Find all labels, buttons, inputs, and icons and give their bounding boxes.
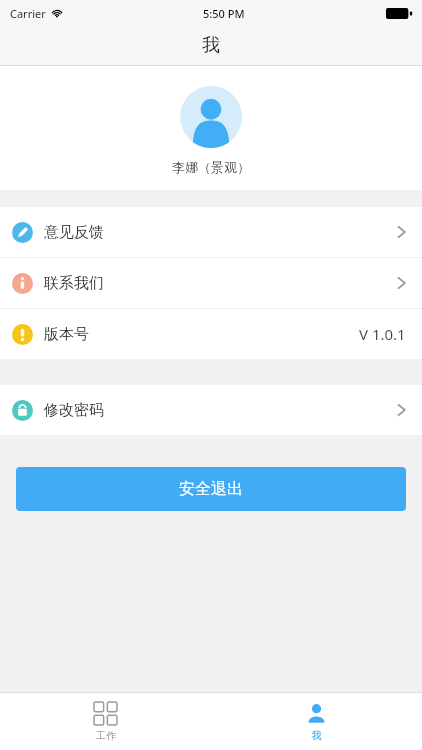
button[interactable]: 版本号 [0, 309, 422, 359]
button[interactable]: 联系我们 [0, 258, 422, 308]
staticText: 李娜（景观） [172, 159, 250, 175]
staticText: 版本号 [44, 325, 89, 344]
staticText: 修改密码 [44, 401, 104, 420]
button[interactable]: 意见反馈 [0, 207, 422, 257]
staticText: 我 [202, 34, 220, 57]
button[interactable]: 工作 [0, 693, 211, 750]
staticText: 5:50 PM [203, 6, 245, 21]
staticText: 工作 [96, 729, 116, 742]
button[interactable]: 我 [211, 693, 422, 750]
staticText: 我 [312, 729, 322, 742]
button[interactable]: 安全退出 [16, 467, 406, 511]
staticText: Carrier [10, 6, 46, 21]
staticText: 安全退出 [179, 479, 243, 499]
button[interactable]: 修改密码 [0, 385, 422, 435]
staticText: 联系我们 [44, 274, 104, 293]
staticText: V 1.0.1 [359, 324, 406, 344]
staticText: 意见反馈 [44, 223, 104, 242]
